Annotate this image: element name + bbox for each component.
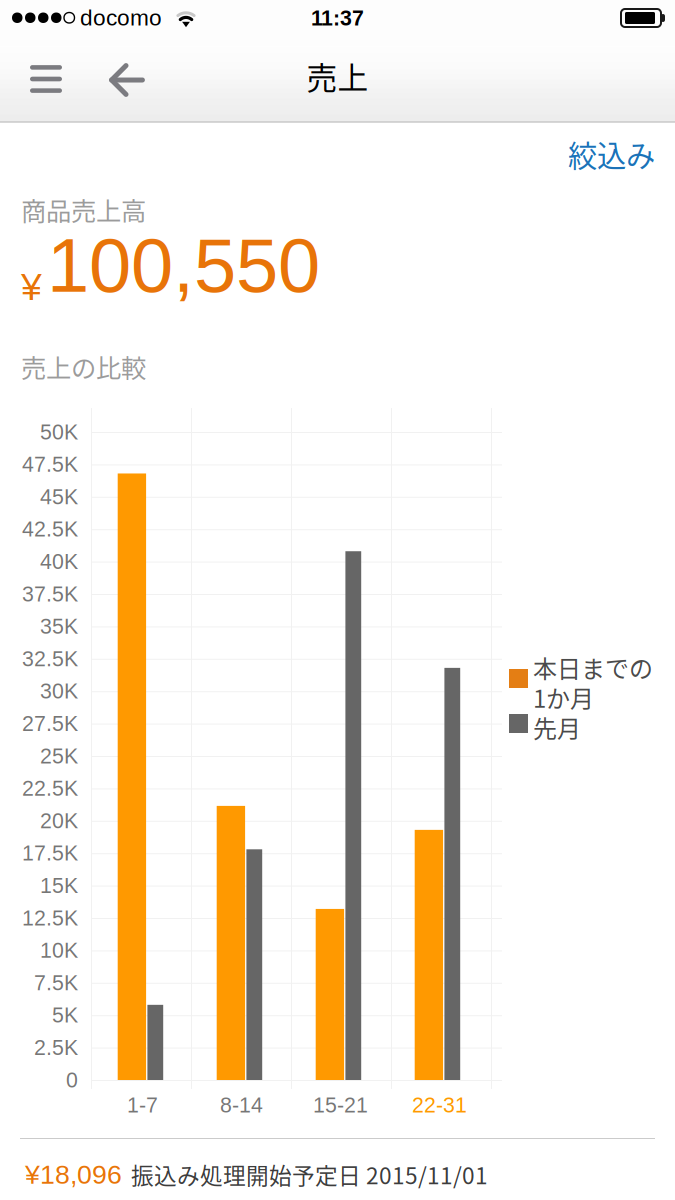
staticText: 35K: [40, 614, 78, 638]
staticText: 先月: [533, 710, 581, 745]
staticText: 本日までの: [533, 650, 653, 685]
staticText: 1-7: [127, 1093, 158, 1117]
staticText: 15K: [40, 874, 78, 897]
staticText: docomo: [80, 5, 162, 30]
staticText: 8-14: [220, 1093, 263, 1117]
staticText: 17.5K: [22, 841, 78, 865]
button[interactable]: Menu: [14, 41, 78, 116]
staticText: 7.5K: [34, 971, 78, 995]
staticText: 47.5K: [22, 452, 78, 476]
staticText: 商品売上高: [21, 191, 146, 228]
button[interactable]: Back: [95, 42, 159, 117]
staticText: 22.5K: [22, 776, 78, 800]
staticText: ¥18,096: [25, 1159, 122, 1189]
staticText: 1か月: [533, 680, 594, 715]
staticText: 45K: [40, 485, 78, 509]
staticText: 12.5K: [22, 906, 78, 930]
staticText: 32.5K: [22, 647, 78, 671]
staticText: 絞込み: [568, 133, 655, 175]
staticText: 50K: [40, 420, 78, 444]
staticText: 0: [66, 1068, 78, 1092]
staticText: 27.5K: [22, 712, 78, 735]
staticText: 10K: [40, 938, 78, 962]
staticText: 22-31: [412, 1093, 467, 1117]
staticText: 15-21: [313, 1093, 368, 1117]
staticText: 2.5K: [34, 1036, 78, 1059]
staticText: 40K: [40, 550, 78, 573]
staticText: 振込み処理開始予定日 2015/11/01: [131, 1158, 488, 1191]
staticText: 25K: [40, 744, 78, 768]
staticText: 売上の比較: [21, 348, 146, 385]
staticText: 100,550: [47, 223, 320, 308]
staticText: 売上: [306, 54, 368, 98]
staticText: 42.5K: [22, 517, 78, 541]
staticText: 37.5K: [22, 582, 78, 606]
button[interactable]: 絞込み: [525, 132, 655, 176]
staticText: 20K: [40, 809, 78, 833]
staticText: 30K: [40, 679, 78, 703]
staticText: ¥: [21, 266, 42, 308]
staticText: 5K: [52, 1003, 78, 1027]
staticText: 11:37: [311, 6, 364, 30]
